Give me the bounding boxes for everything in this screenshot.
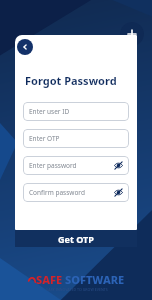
button[interactable]: Enter OTP (23, 129, 129, 148)
staticText: EASY INNOVATED TO GROW EVENTS (46, 287, 108, 292)
button[interactable]: Confirm password (23, 183, 129, 202)
button[interactable]: Enter user ID (23, 102, 129, 121)
button[interactable]: Toggle password visibility (113, 160, 124, 171)
button[interactable]: Get OTP (15, 230, 137, 247)
button[interactable]: Enter password (23, 156, 129, 175)
staticText: Forgot Password (25, 73, 117, 88)
button[interactable]: Back (17, 39, 33, 55)
staticText: SOFTWARE (65, 272, 125, 287)
staticText: Enter OTP (29, 134, 60, 143)
staticText: Enter user ID (29, 107, 70, 116)
staticText: Get OTP (58, 233, 94, 245)
staticText: Confirm password (29, 188, 85, 197)
staticText: SAFE (36, 272, 63, 287)
button[interactable]: Add (120, 22, 144, 46)
staticText: Enter password (29, 161, 77, 170)
button[interactable]: Toggle password visibility (113, 187, 124, 198)
